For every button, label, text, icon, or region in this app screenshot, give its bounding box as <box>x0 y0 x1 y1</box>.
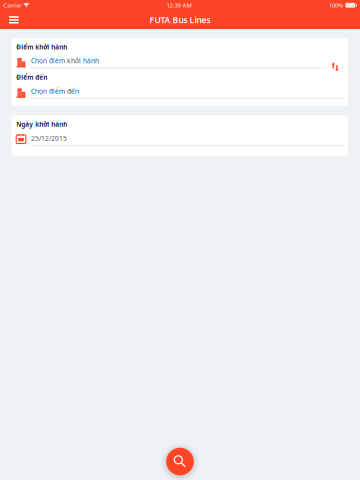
staticText: 100% <box>329 1 343 9</box>
staticText: Điểm khởi hành <box>16 43 67 51</box>
staticText: Chọn điểm khởi hành <box>31 56 99 65</box>
staticText: Chọn điểm đến <box>31 87 79 96</box>
button[interactable]: Menu <box>2 11 26 29</box>
button[interactable]: Điểm đến <box>11 68 348 99</box>
staticText: Điểm đến <box>16 73 47 82</box>
button[interactable]: Ngày khởi hành <box>11 115 348 146</box>
button[interactable]: Swap origin and destination <box>329 38 348 74</box>
button[interactable]: Điểm khởi hành <box>11 38 348 68</box>
button[interactable]: Search <box>166 448 194 475</box>
staticText: FUTA Bus Lines <box>149 14 210 26</box>
staticText: 12:39 AM <box>167 1 192 9</box>
staticText: Ngày khởi hành <box>16 120 67 129</box>
staticText: Carrier <box>3 1 21 9</box>
staticText: 25/12/2015 <box>31 134 67 143</box>
